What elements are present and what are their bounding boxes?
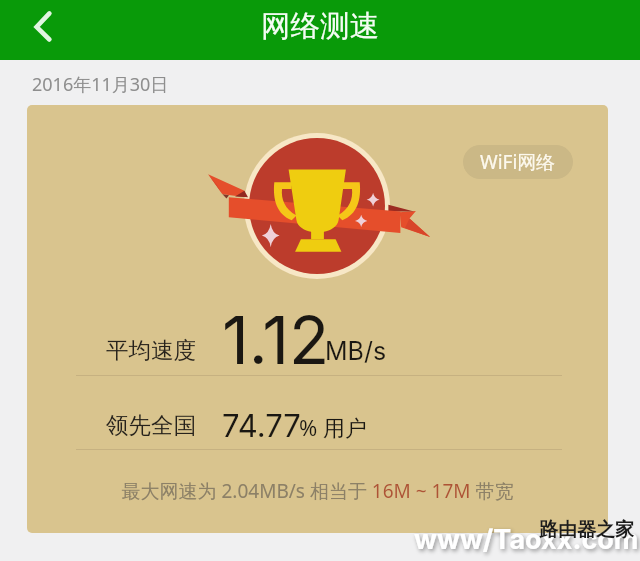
staticText: WiFi网络: [480, 149, 556, 175]
button[interactable]: WiFi网络: [463, 145, 573, 179]
staticText: MB/s: [325, 336, 387, 366]
staticText: 网络测速: [261, 8, 379, 45]
staticText: 最大网速为 2.04MB/s 相当于 16M ~ 17M 带宽: [27, 478, 608, 504]
staticText: www/Taoxx.com: [414, 523, 639, 556]
staticText: 平均速度: [106, 336, 196, 364]
staticText: 2016年11月30日: [32, 72, 169, 97]
staticText: 领先全国: [106, 411, 196, 439]
staticText: % 用户: [299, 412, 368, 442]
staticText: 74.77: [222, 407, 301, 445]
staticText: 路由器之家: [539, 518, 634, 542]
staticText: 1.12: [222, 300, 330, 380]
button[interactable]: Back: [0, 0, 86, 60]
